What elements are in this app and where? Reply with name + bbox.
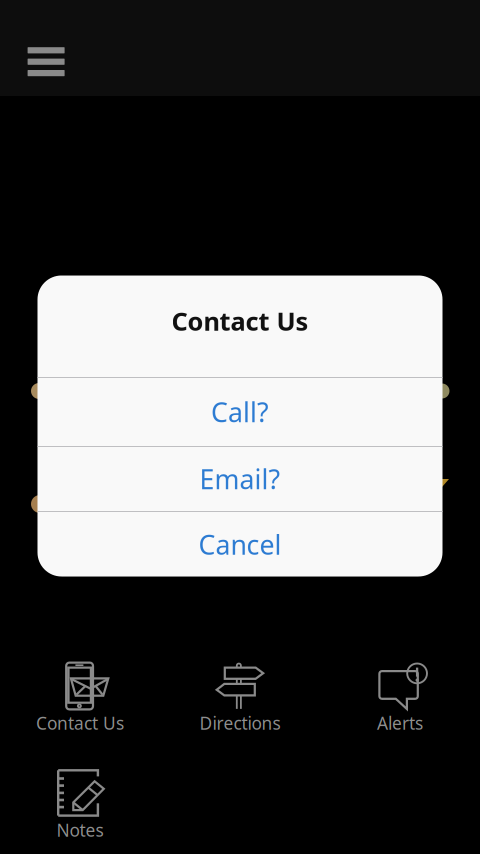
button[interactable]: Directions — [160, 646, 320, 746]
staticText: Email? — [199, 461, 280, 497]
button[interactable]: Notes — [0, 753, 160, 853]
staticText: Contact Us — [171, 304, 308, 338]
button[interactable]: Contact Us — [0, 646, 160, 746]
staticText: Contact Us — [36, 711, 124, 734]
staticText: Notes — [56, 818, 103, 841]
button[interactable]: Alerts — [320, 646, 480, 746]
button[interactable]: Call? — [37, 378, 442, 446]
staticText: Cancel — [198, 527, 281, 562]
button[interactable]: Menu — [0, 0, 65, 96]
staticText: Directions — [199, 711, 280, 734]
staticText: Alerts — [377, 711, 423, 734]
button[interactable]: Email? — [37, 447, 442, 511]
staticText: Call? — [211, 394, 269, 430]
button[interactable]: Cancel — [37, 512, 442, 577]
